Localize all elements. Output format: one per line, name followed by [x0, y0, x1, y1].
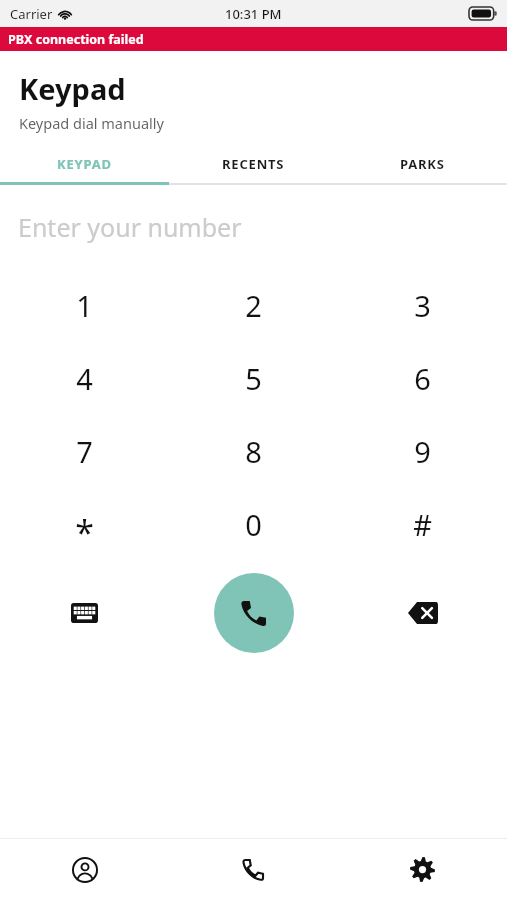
button[interactable]: Backspace	[338, 569, 507, 657]
staticText: #	[413, 505, 432, 544]
staticText: RECENTS	[222, 155, 285, 173]
button[interactable]: Keypad	[169, 839, 338, 900]
staticText: Keypad	[19, 69, 126, 108]
staticText: Carrier	[10, 5, 53, 23]
button[interactable]: *	[0, 488, 169, 561]
button[interactable]: RECENTS	[169, 155, 338, 173]
staticText: 9	[414, 432, 431, 471]
staticText: 6	[414, 359, 431, 398]
staticText: 7	[76, 432, 93, 471]
button[interactable]: 7	[0, 415, 169, 488]
button[interactable]: Call	[214, 573, 294, 653]
button[interactable]: Show keyboard	[0, 569, 169, 657]
staticText: PBX connection failed	[8, 31, 144, 48]
button[interactable]: 1	[0, 269, 169, 342]
staticText: *	[75, 509, 94, 555]
button[interactable]: Contacts	[0, 839, 169, 900]
button[interactable]: 8	[169, 415, 338, 488]
button[interactable]: #	[338, 488, 507, 561]
staticText: 10:31 PM	[225, 5, 282, 23]
button[interactable]: 2	[169, 269, 338, 342]
staticText: 8	[245, 432, 262, 471]
button[interactable]: 5	[169, 342, 338, 415]
staticText: 0	[245, 505, 262, 544]
staticText: KEYPAD	[57, 155, 112, 173]
staticText: 5	[245, 359, 262, 398]
staticText: Keypad dial manually	[19, 113, 164, 133]
button[interactable]: 6	[338, 342, 507, 415]
button[interactable]: 9	[338, 415, 507, 488]
button[interactable]: 3	[338, 269, 507, 342]
button[interactable]: 4	[0, 342, 169, 415]
staticText: 3	[414, 286, 431, 325]
staticText: 4	[76, 359, 93, 398]
staticText: 2	[245, 286, 262, 325]
staticText: PARKS	[400, 155, 445, 173]
button[interactable]: PARKS	[338, 155, 507, 173]
button[interactable]: 0	[169, 488, 338, 561]
button[interactable]: PBX connection failed	[0, 27, 507, 51]
button[interactable]: Enter your number	[0, 205, 507, 249]
button[interactable]: KEYPAD	[0, 155, 169, 173]
button[interactable]: Settings	[338, 839, 507, 900]
staticText: 1	[76, 286, 93, 325]
staticText: Enter your number	[18, 210, 242, 244]
